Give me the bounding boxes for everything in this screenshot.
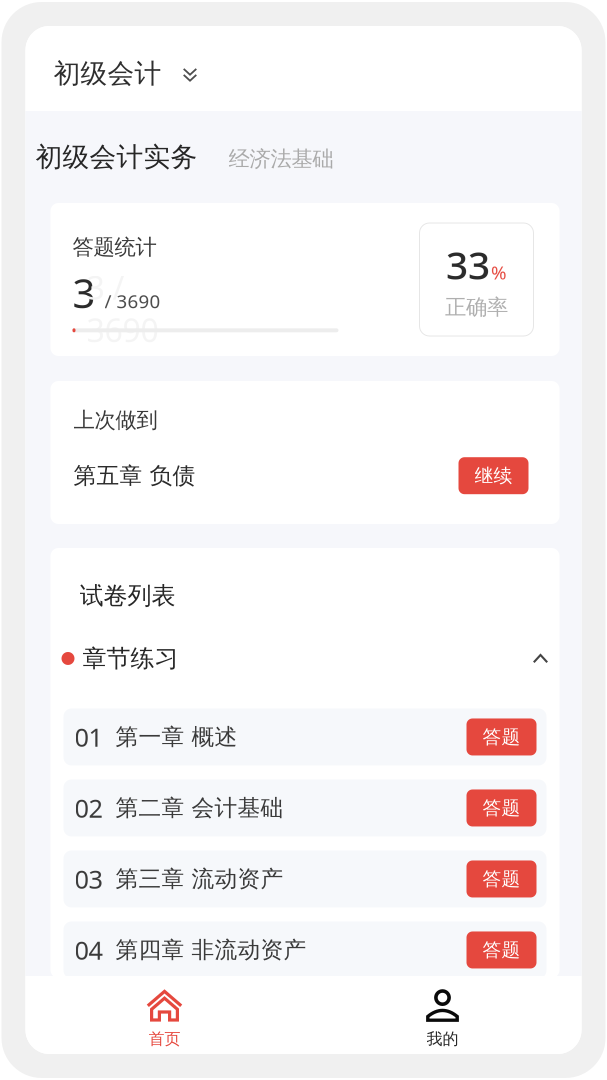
staticText: 初级会计实务 (35, 141, 197, 173)
staticText: 正确率 (445, 294, 508, 320)
staticText: / 3690 (104, 289, 160, 313)
staticText: 第四章 非流动资产 (115, 936, 306, 964)
button[interactable]: 初级会计实务 (35, 141, 197, 173)
button[interactable]: 01 (63, 708, 546, 765)
button[interactable]: 经济法基础 (228, 146, 333, 172)
staticText: 答题 (482, 725, 520, 748)
staticText: 第三章 流动资产 (115, 865, 283, 893)
staticText: 答题 (482, 867, 520, 890)
staticText: % (491, 260, 507, 285)
staticText: 33 (446, 239, 490, 290)
staticText: 答题 (482, 938, 520, 961)
button[interactable]: 02 (63, 779, 546, 836)
staticText: 答题统计 (72, 234, 156, 260)
staticText: 答题 (482, 796, 520, 819)
staticText: 3 (72, 266, 95, 319)
button[interactable]: 我的 (303, 976, 581, 1054)
staticText: 01 (74, 720, 102, 754)
staticText: 3 / 3690 (86, 266, 158, 351)
staticText: 02 (74, 791, 102, 825)
staticText: 上次做到 (73, 407, 157, 433)
staticText: 04 (74, 933, 102, 967)
button[interactable]: 03 (63, 850, 546, 907)
button[interactable]: Switch subject (182, 64, 197, 82)
button[interactable]: 继续 (458, 457, 528, 494)
staticText: 第二章 会计基础 (115, 794, 283, 822)
staticText: 首页 (148, 1029, 180, 1049)
button[interactable]: 章节练习 (50, 641, 559, 675)
staticText: 第五章 负债 (73, 462, 195, 490)
button[interactable]: 首页 (25, 976, 303, 1054)
staticText: 03 (74, 862, 102, 896)
staticText: 初级会计 (53, 57, 161, 90)
staticText: 试卷列表 (79, 581, 175, 610)
staticText: 继续 (474, 464, 512, 487)
staticText: 第一章 概述 (115, 723, 237, 751)
button[interactable]: 04 (63, 921, 546, 978)
staticText: 我的 (426, 1029, 458, 1049)
staticText: 章节练习 (82, 644, 178, 673)
staticText: 经济法基础 (228, 146, 333, 172)
